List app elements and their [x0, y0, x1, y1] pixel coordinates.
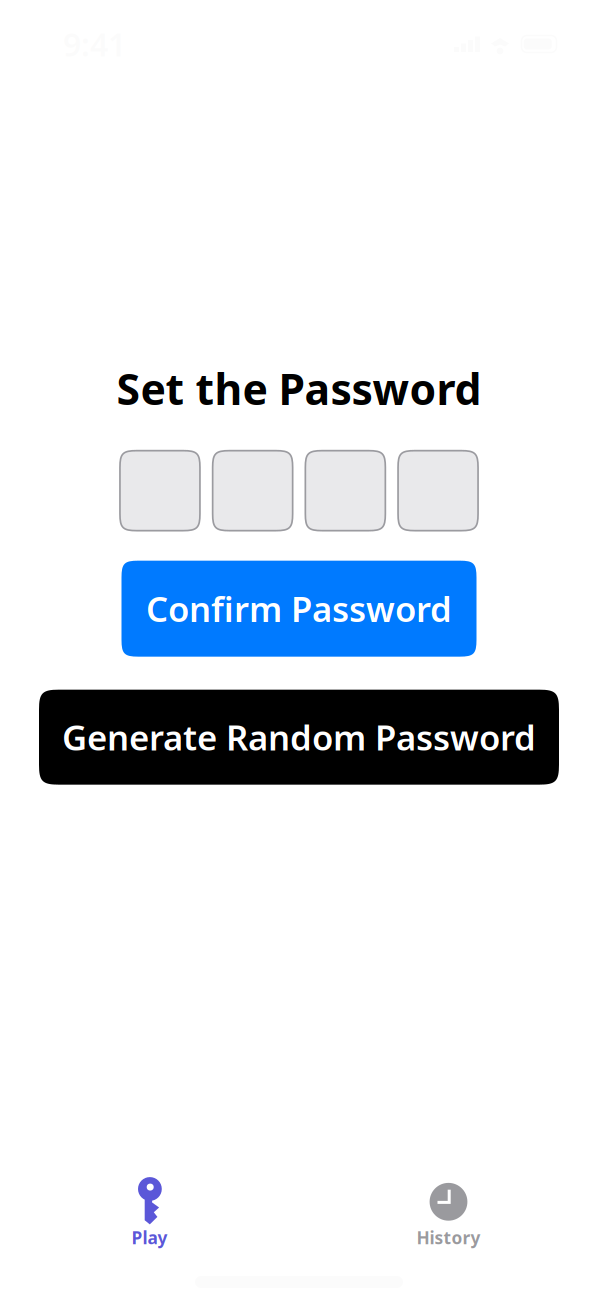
staticText: Play	[131, 1226, 167, 1249]
button[interactable]: History	[299, 1173, 598, 1249]
button[interactable]: Generate Random Password	[39, 690, 559, 785]
staticText: Set the Password	[116, 360, 481, 417]
staticText: Generate Random Password	[62, 714, 536, 760]
button[interactable]: Confirm Password	[121, 561, 476, 657]
staticText: Confirm Password	[146, 586, 452, 632]
staticText: History	[416, 1226, 480, 1249]
button[interactable]: Play	[0, 1173, 299, 1249]
